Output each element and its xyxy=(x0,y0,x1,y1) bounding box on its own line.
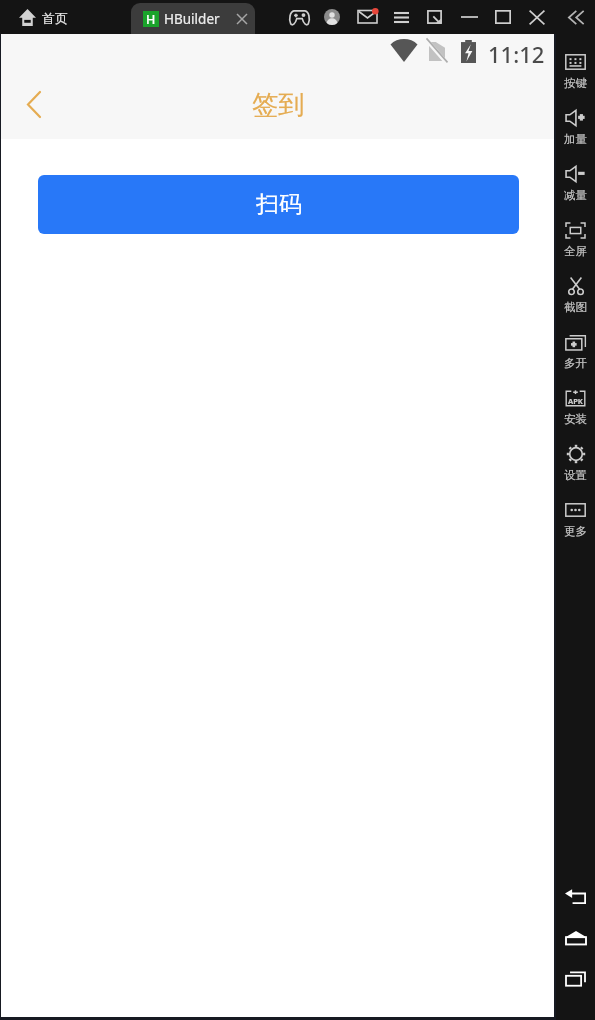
staticText: H xyxy=(146,11,156,27)
button[interactable]: 首页 xyxy=(19,9,68,26)
staticText: HBuilder xyxy=(164,10,220,28)
button[interactable]: 全屏 xyxy=(556,219,595,275)
button[interactable]: Game controller xyxy=(287,0,311,34)
button[interactable]: 多开 xyxy=(556,331,595,387)
staticText: 加量 xyxy=(564,132,587,146)
button[interactable]: Maximize xyxy=(491,0,515,34)
staticText: 安装 xyxy=(564,412,587,426)
button[interactable]: Resize window xyxy=(422,0,446,34)
button[interactable]: H xyxy=(131,3,255,34)
button[interactable]: Back xyxy=(556,877,595,915)
staticText: 更多 xyxy=(564,524,587,538)
staticText: 签到 xyxy=(252,88,305,121)
button[interactable]: Menu xyxy=(389,0,413,34)
staticText: 减量 xyxy=(564,188,587,202)
staticText: 多开 xyxy=(564,356,587,370)
staticText: 11:12 xyxy=(488,39,545,69)
staticText: 首页 xyxy=(42,10,68,26)
staticText: 全屏 xyxy=(564,244,587,258)
button[interactable]: Mail xyxy=(355,0,379,34)
button[interactable]: Recent apps xyxy=(556,960,595,998)
button[interactable]: 更多 xyxy=(556,499,595,555)
button[interactable]: 减量 xyxy=(556,163,595,219)
button[interactable]: Collapse toolbar xyxy=(560,3,591,31)
button[interactable]: 扫码 xyxy=(38,175,519,234)
staticText: 扫码 xyxy=(256,190,302,219)
button[interactable]: 设置 xyxy=(556,443,595,499)
button[interactable]: Minimize xyxy=(457,0,481,34)
button[interactable]: 按键 xyxy=(556,51,595,107)
button[interactable]: Account xyxy=(320,0,344,34)
staticText: 按键 xyxy=(564,76,587,90)
button[interactable]: 加量 xyxy=(556,107,595,163)
button[interactable]: APK xyxy=(556,387,595,443)
staticText: 设置 xyxy=(564,468,587,482)
button[interactable]: Back xyxy=(12,82,56,126)
button[interactable]: Close xyxy=(525,0,549,34)
staticText: 截图 xyxy=(564,300,587,314)
button[interactable]: 截图 xyxy=(556,275,595,331)
button[interactable]: Home xyxy=(556,919,595,957)
staticText: APK xyxy=(568,396,583,406)
button[interactable]: Close tab xyxy=(235,12,249,26)
